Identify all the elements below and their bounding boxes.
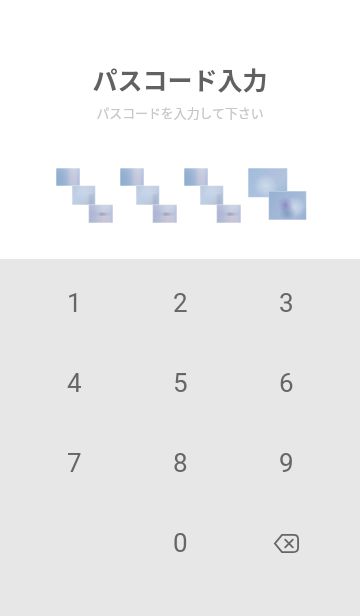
button[interactable]: 8 [127, 423, 233, 503]
button[interactable]: Backspace [233, 503, 339, 583]
button[interactable]: 0 [127, 503, 233, 583]
staticText: 6 [279, 368, 294, 398]
staticText: パスコードを入力して下さい [96, 103, 264, 122]
button[interactable]: 1 [21, 263, 127, 343]
staticText: 7 [67, 448, 82, 478]
staticText: 1 [67, 288, 82, 318]
staticText: 2 [173, 288, 188, 318]
button[interactable]: 5 [127, 343, 233, 423]
button[interactable]: 3 [233, 263, 339, 343]
staticText: 9 [279, 448, 294, 478]
button[interactable]: 4 [21, 343, 127, 423]
button[interactable]: 9 [233, 423, 339, 503]
button[interactable]: 6 [233, 343, 339, 423]
staticText: 8 [173, 448, 188, 478]
staticText: 3 [279, 288, 294, 318]
button[interactable]: 2 [127, 263, 233, 343]
staticText: パスコード入力 [92, 61, 268, 97]
staticText: 4 [67, 368, 82, 398]
staticText: 0 [173, 528, 188, 558]
button[interactable]: 7 [21, 423, 127, 503]
staticText: 5 [173, 368, 188, 398]
